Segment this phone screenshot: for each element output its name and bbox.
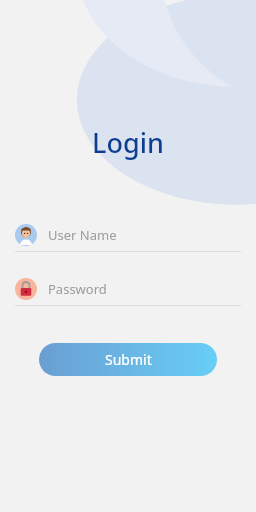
other: User name icon xyxy=(15,224,37,246)
staticText: User Name xyxy=(48,226,117,244)
staticText: Password xyxy=(48,280,107,298)
other: Password icon xyxy=(15,278,37,300)
staticText: Login xyxy=(92,124,164,161)
staticText: Submit xyxy=(105,350,152,369)
button[interactable]: User name icon xyxy=(15,224,241,246)
button[interactable]: Submit xyxy=(39,343,217,376)
button[interactable]: Password icon xyxy=(15,278,241,300)
